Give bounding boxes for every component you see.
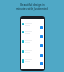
- button[interactable]: [21, 26, 43, 29]
- button[interactable]: [22, 23, 44, 26]
- button[interactable]: [22, 31, 44, 34]
- button[interactable]: [21, 44, 43, 47]
- button[interactable]: [21, 35, 43, 38]
- button[interactable]: [22, 50, 44, 53]
- button[interactable]: [21, 54, 43, 57]
- staticText: Beautiful design in: [20, 3, 45, 7]
- staticText: minutes with Justinmind: [16, 7, 48, 11]
- button[interactable]: [22, 40, 44, 43]
- button[interactable]: [22, 59, 44, 63]
- button[interactable]: [21, 62, 43, 65]
